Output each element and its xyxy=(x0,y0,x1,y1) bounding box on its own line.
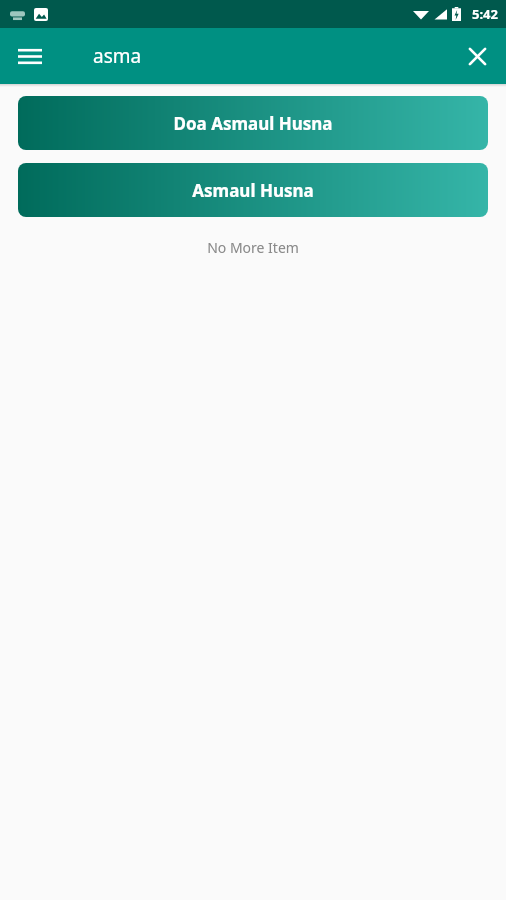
button[interactable]: Doa Asmaul Husna xyxy=(18,96,488,150)
button[interactable]: Asmaul Husna xyxy=(18,163,488,217)
staticText: Doa Asmaul Husna xyxy=(173,112,333,135)
staticText: Asmaul Husna xyxy=(192,179,314,202)
staticText: No More Item xyxy=(207,238,299,257)
staticText: 5:42 xyxy=(472,5,498,23)
button[interactable]: Close search xyxy=(453,32,501,80)
button[interactable]: Open navigation drawer xyxy=(6,32,54,80)
staticText: asma xyxy=(93,43,142,69)
